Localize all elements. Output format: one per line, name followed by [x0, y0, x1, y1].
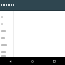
button[interactable]	[0, 55, 13, 57]
button[interactable]: Home	[21, 57, 43, 65]
button[interactable]	[0, 20, 13, 27]
button[interactable]	[0, 41, 13, 48]
button[interactable]: Back	[0, 57, 21, 65]
button[interactable]	[0, 48, 13, 55]
button[interactable]	[0, 34, 13, 41]
button[interactable]	[1, 4, 14, 6]
button[interactable]	[0, 13, 13, 20]
button[interactable]: Recent apps	[43, 57, 65, 65]
button[interactable]	[0, 27, 13, 34]
